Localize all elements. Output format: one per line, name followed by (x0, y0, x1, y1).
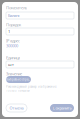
staticText: 1 (8, 29, 10, 34)
staticText: Порядок (6, 22, 21, 27)
staticText: Баланс (8, 13, 20, 18)
staticText: Рекомендуемый размер изображения (6, 85, 57, 88)
staticText: IP адрес (6, 38, 20, 43)
staticText: Выбрать из справочника (6, 78, 31, 81)
staticText: Показатель (6, 5, 27, 10)
button[interactable]: Отмена (6, 104, 27, 112)
staticText: Сохранить (52, 105, 71, 111)
staticText: Значение (6, 71, 22, 76)
button[interactable]: Сохранить (50, 104, 74, 112)
button[interactable]: Выбрать из справочника (6, 76, 31, 83)
staticText: шт (8, 62, 14, 67)
staticText: Отмена (9, 105, 23, 111)
staticText: 300000 (6, 43, 18, 48)
staticText: Единица (6, 55, 20, 60)
staticText: 100x50 пикселей (6, 89, 30, 92)
